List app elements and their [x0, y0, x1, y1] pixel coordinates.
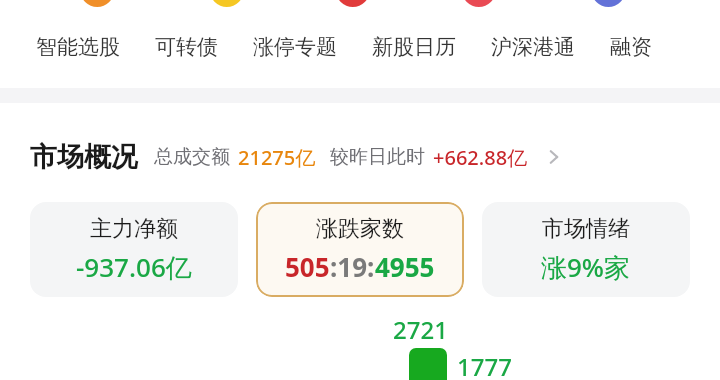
- staticText: :19:: [330, 249, 375, 284]
- staticText: 主力净额: [90, 215, 178, 243]
- staticText: 市场情绪: [542, 215, 630, 243]
- staticText: 新股日历: [372, 34, 456, 60]
- button[interactable]: 主力净额: [30, 202, 238, 297]
- staticText: 1777: [457, 350, 512, 380]
- staticText: 智能选股: [36, 34, 120, 60]
- staticText: 涨9%家: [541, 249, 631, 285]
- staticText: 涨停专题: [253, 34, 337, 60]
- staticText: 市场概况: [30, 140, 138, 174]
- staticText: 总成交额: [154, 145, 230, 169]
- staticText: 4955: [375, 249, 435, 284]
- button[interactable]: 涨跌家数: [256, 202, 464, 297]
- button[interactable]: 沪深港通: [485, 28, 581, 66]
- staticText: 505: [285, 249, 330, 284]
- staticText: 21275亿: [238, 144, 316, 171]
- button[interactable]: 市场情绪: [482, 202, 690, 297]
- other: 查看市场概况详情: [542, 145, 566, 169]
- staticText: 较昨日此时: [330, 145, 425, 169]
- staticText: 沪深港通: [491, 34, 575, 60]
- button[interactable]: 市场概况: [0, 128, 720, 186]
- staticText: 可转债: [155, 34, 218, 60]
- button[interactable]: 融资: [604, 28, 658, 66]
- button[interactable]: 可转债: [149, 28, 224, 66]
- staticText: -937.06亿: [76, 249, 192, 285]
- button[interactable]: 下跌家数柱状图: [409, 348, 447, 380]
- staticText: 2721: [393, 313, 448, 346]
- button[interactable]: 涨停专题: [247, 28, 343, 66]
- staticText: 融资: [610, 34, 652, 60]
- button[interactable]: 智能选股: [30, 28, 126, 66]
- staticText: 涨跌家数: [316, 215, 404, 243]
- staticText: +662.88亿: [433, 144, 528, 171]
- button[interactable]: 新股日历: [366, 28, 462, 66]
